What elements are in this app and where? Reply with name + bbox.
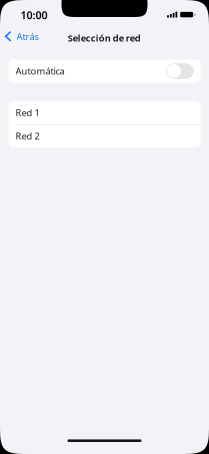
button[interactable]: Automática <box>8 59 200 82</box>
staticText: 10:00 <box>20 8 47 22</box>
staticText: Red 2 <box>16 130 40 142</box>
button[interactable]: Red 2 <box>8 125 200 147</box>
staticText: Red 1 <box>16 106 40 119</box>
staticText: Atrás <box>17 30 39 42</box>
button[interactable]: Atrás <box>0 27 44 46</box>
staticText: Automática <box>16 65 65 77</box>
staticText: Selección de red <box>68 32 141 44</box>
button[interactable]: Red 1 <box>8 101 200 124</box>
